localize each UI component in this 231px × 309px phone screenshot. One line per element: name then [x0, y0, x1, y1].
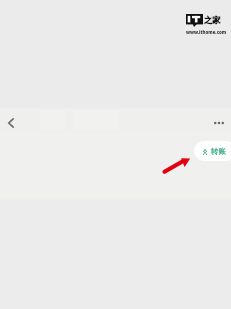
staticText: www.ithome.com: [186, 29, 227, 35]
button[interactable]: More options: [208, 111, 230, 135]
button[interactable]: 转账: [194, 141, 231, 161]
button[interactable]: Back: [0, 111, 22, 135]
staticText: 转账: [211, 147, 226, 156]
staticText: 之家: [204, 15, 221, 25]
